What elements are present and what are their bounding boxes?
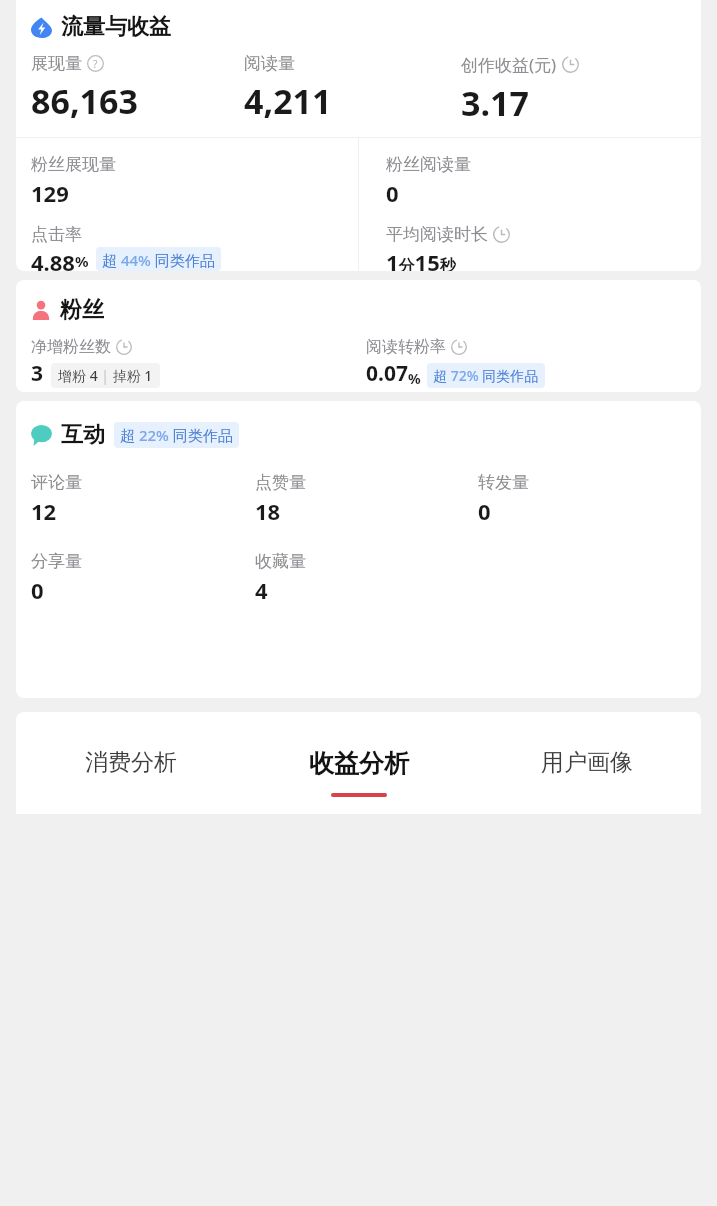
- staticText: 点赞量: [255, 472, 306, 493]
- staticText: 平均阅读时长: [386, 224, 488, 245]
- button[interactable]: 收益分析: [245, 748, 473, 797]
- button[interactable]: 点赞量: [255, 472, 478, 526]
- staticText: 净增粉丝数: [31, 337, 111, 357]
- button[interactable]: 评论量: [31, 472, 255, 526]
- staticText: 用户画像: [541, 748, 633, 777]
- button[interactable]: 转发量: [478, 472, 701, 526]
- staticText: 超 44% 同类作品: [102, 250, 215, 268]
- staticText: 3: [31, 359, 44, 388]
- button[interactable]: 展现量: [31, 53, 244, 124]
- staticText: 增粉 4 | 掉粉 1: [58, 366, 153, 385]
- staticText: 86,163: [31, 78, 138, 124]
- button[interactable]: 超 72% 同类作品: [427, 363, 545, 388]
- staticText: 12: [31, 496, 57, 526]
- staticText: 0: [478, 496, 491, 526]
- staticText: 分享量: [31, 551, 82, 572]
- staticText: 评论量: [31, 472, 82, 493]
- staticText: 消费分析: [85, 748, 177, 777]
- staticText: 18: [255, 496, 281, 526]
- staticText: 收藏量: [255, 551, 306, 572]
- staticText: 粉丝阅读量: [386, 154, 471, 175]
- staticText: 阅读转粉率: [366, 337, 446, 357]
- staticText: 129: [31, 178, 69, 208]
- staticText: 4: [255, 575, 268, 605]
- button[interactable]: 流量与收益: [31, 13, 171, 41]
- staticText: 超 22% 同类作品: [120, 425, 233, 445]
- button[interactable]: 分享量: [31, 551, 255, 605]
- button[interactable]: 消费分析: [16, 748, 245, 795]
- staticText: 0: [386, 178, 399, 208]
- staticText: 0: [31, 575, 44, 605]
- staticText: 收益分析: [309, 748, 409, 779]
- staticText: 阅读量: [244, 53, 295, 74]
- staticText: 粉丝展现量: [31, 154, 116, 175]
- staticText: 转发量: [478, 472, 529, 493]
- staticText: 点击率: [31, 224, 82, 245]
- staticText: 1分15秒: [386, 247, 456, 271]
- button[interactable]: 用户画像: [473, 748, 701, 795]
- staticText: 流量与收益: [61, 13, 171, 41]
- staticText: %: [408, 369, 421, 388]
- staticText: 4.88: [31, 247, 75, 271]
- staticText: 超 72% 同类作品: [433, 366, 539, 385]
- staticText: %: [75, 251, 89, 271]
- staticText: ?: [93, 57, 98, 71]
- staticText: 0.07: [366, 359, 408, 388]
- staticText: 互动: [61, 421, 105, 449]
- staticText: 粉丝: [60, 296, 104, 324]
- button[interactable]: 阅读量: [244, 53, 461, 124]
- staticText: 创作收益(元): [461, 53, 557, 76]
- button[interactable]: 粉丝: [31, 296, 104, 324]
- button[interactable]: 创作收益(元): [461, 53, 701, 126]
- staticText: 3.17: [461, 80, 529, 126]
- staticText: 4,211: [244, 78, 332, 124]
- button[interactable]: 超 44% 同类作品: [96, 247, 221, 271]
- button[interactable]: 互动: [31, 421, 239, 449]
- button[interactable]: 收藏量: [255, 551, 478, 605]
- button[interactable]: 增粉 4 | 掉粉 1: [51, 363, 160, 388]
- staticText: 展现量: [31, 53, 82, 74]
- button[interactable]: 超 22% 同类作品: [114, 422, 239, 448]
